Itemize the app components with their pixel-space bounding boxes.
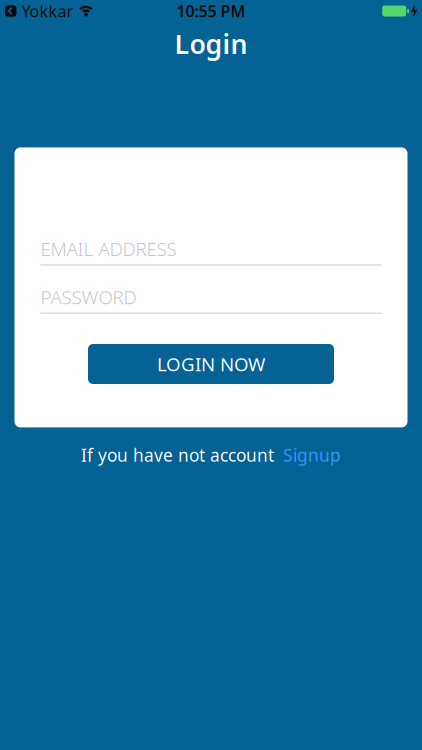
button[interactable]: Signup [283,443,341,466]
button[interactable]: LOGIN NOW [88,344,334,384]
staticText: If you have not account [81,443,274,466]
button[interactable]: PASSWORD [40,285,381,314]
staticText: PASSWORD [40,285,136,309]
staticText: 10:55 PM [176,0,245,22]
staticText: EMAIL ADDRESS [40,236,176,261]
staticText: Yokkar [21,0,73,22]
button[interactable]: EMAIL ADDRESS [40,236,381,266]
staticText: Signup [283,443,341,466]
staticText: LOGIN NOW [157,352,265,376]
staticText: Login [174,26,247,61]
